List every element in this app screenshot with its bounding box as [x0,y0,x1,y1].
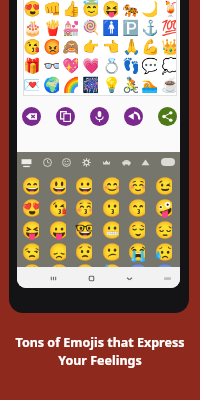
button[interactable]: Emoji [127,197,145,219]
button[interactable]: Emoji [82,18,98,37]
button[interactable]: Emoji [48,197,66,219]
button[interactable]: Emoji [122,37,138,56]
staticText: 😛 [48,220,66,240]
button[interactable]: Emoji [62,0,78,18]
button[interactable]: Emoji [62,18,78,37]
staticText: Tons of Emojis that Express Your Feeling… [0,334,200,369]
button[interactable]: Emoji [74,175,92,197]
button[interactable]: Emoji [141,56,157,75]
button[interactable]: Emoji [102,18,118,37]
button[interactable]: Emoji [161,56,177,75]
staticText: 🙏 [122,38,138,56]
button[interactable]: Recents [46,271,60,285]
button[interactable]: Emoji [48,175,66,197]
button[interactable]: Emoji [154,263,172,267]
staticText: 🌙 [141,0,157,18]
staticText: 😪 [74,263,92,267]
button[interactable]: Voice input [90,107,109,126]
staticText: 🎂 [23,19,39,37]
button[interactable]: Emoji [74,263,92,267]
button[interactable]: Emoji [23,18,39,37]
staticText: 😇 [82,0,98,18]
button[interactable]: Emoji [82,37,98,56]
button[interactable]: Emoji [74,241,92,263]
button[interactable]: Back [122,271,136,285]
button[interactable]: Emoji [102,0,118,18]
button[interactable]: Emoji [122,56,138,75]
button[interactable]: Emoji [161,0,177,18]
staticText: 😱 [127,263,145,267]
button[interactable]: Emoji [101,175,119,197]
button[interactable]: Emoji [48,219,66,241]
button[interactable]: Emoji [82,0,98,18]
button[interactable]: Emoji [43,0,59,18]
staticText: 💪 [141,38,157,56]
button[interactable]: Share [158,107,177,126]
button[interactable]: Emoji [48,263,66,267]
button[interactable]: Emoji [21,263,39,267]
button[interactable]: Emoji [43,18,59,37]
button[interactable]: Emoji [101,241,119,263]
button[interactable]: Emoji [62,75,78,94]
button[interactable]: Emoji [122,75,138,94]
button[interactable]: Switch keyboard [160,271,174,285]
button[interactable]: Emoji [21,219,39,241]
button[interactable]: Emoji [102,37,118,56]
staticText: 💍 [102,57,118,75]
staticText: 👓 [43,57,59,75]
button[interactable]: Emoji [62,56,78,75]
button[interactable]: Backspace [22,107,41,126]
button[interactable]: Emoji [101,263,119,267]
button[interactable]: Emoji [141,18,157,37]
button[interactable]: Emoji [127,219,145,241]
button[interactable]: Emoji [101,219,119,241]
button[interactable]: Delete [161,158,175,166]
button[interactable]: Emoji [127,241,145,263]
staticText: 😊 [101,176,119,196]
staticText: 😓 [101,263,119,267]
staticText: 😘 [48,198,66,218]
button[interactable]: Emoji [161,75,177,94]
button[interactable]: Emoji [161,37,177,56]
button[interactable]: Emoji [48,241,66,263]
button[interactable]: Emoji [74,219,92,241]
button[interactable]: Emoji [43,37,59,56]
button[interactable]: Emoji [127,175,145,197]
staticText: 😭 [127,242,145,262]
button[interactable]: Emoji [23,0,39,18]
button[interactable]: Emoji [102,56,118,75]
button[interactable]: Copy [56,107,75,126]
button[interactable]: Emoji [21,241,39,263]
button[interactable]: Emoji [82,75,98,94]
button[interactable]: Emoji [141,75,157,94]
button[interactable]: Emoji [23,56,39,75]
button[interactable]: Emoji [154,197,172,219]
button[interactable]: Undo [124,107,143,126]
button[interactable]: Emoji [122,0,138,18]
button[interactable]: Emoji [43,75,59,94]
button[interactable]: Emoji [122,18,138,37]
button[interactable]: Home [84,271,98,285]
button[interactable]: Emoji [23,37,39,56]
button[interactable]: Emoji [154,219,172,241]
button[interactable]: Emoji [154,175,172,197]
staticText: 🍹 [161,0,177,18]
button[interactable]: Emoji [21,175,39,197]
staticText: 😫 [21,263,39,267]
button[interactable]: Emoji [21,197,39,219]
button[interactable]: Emoji [62,37,78,56]
button[interactable]: Emoji [23,75,39,94]
button[interactable]: Emoji [102,75,118,94]
staticText: 🎁 [23,57,39,75]
button[interactable]: Emoji [101,197,119,219]
button[interactable]: Emoji [82,56,98,75]
button[interactable]: Emoji [161,18,177,37]
staticText: 🌈 [62,76,78,94]
button[interactable]: Emoji [127,263,145,267]
staticText: 💯 [161,19,177,37]
button[interactable]: Emoji [154,241,172,263]
button[interactable]: Emoji [43,56,59,75]
button[interactable]: Emoji [141,37,157,56]
button[interactable]: Emoji [74,197,92,219]
button[interactable]: Emoji [141,0,157,18]
